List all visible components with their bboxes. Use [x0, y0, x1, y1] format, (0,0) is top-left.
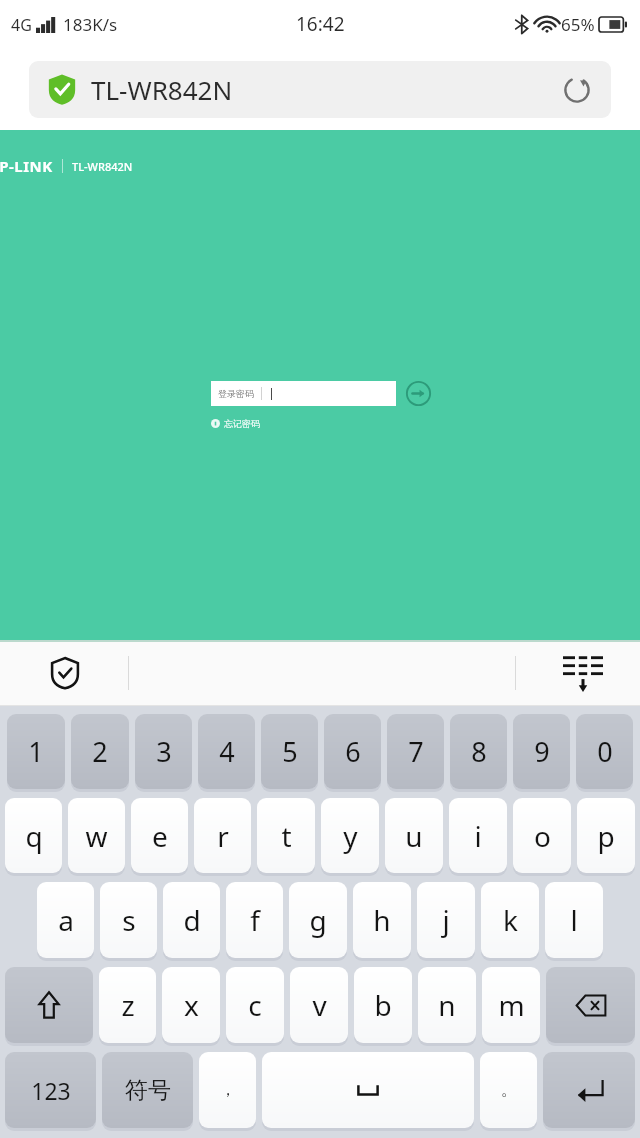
button[interactable]: n [418, 967, 476, 1043]
button[interactable]: e [131, 798, 188, 873]
button[interactable]: a [37, 882, 94, 958]
staticText: 65% [561, 13, 595, 36]
staticText: i [474, 817, 482, 855]
button[interactable]: m [482, 967, 540, 1043]
button[interactable]: 。 [480, 1052, 537, 1128]
button[interactable]: c [226, 967, 284, 1043]
button[interactable]: 3 [135, 714, 192, 789]
staticText: u [405, 817, 423, 855]
staticText: 4 [219, 733, 235, 770]
staticText: a [58, 901, 74, 939]
staticText: TL-WR842N [72, 159, 133, 174]
staticText: 忘记密码 [224, 418, 260, 429]
staticText: 123 [31, 1075, 71, 1106]
button[interactable]: 1 [7, 714, 65, 789]
staticText: e [152, 817, 168, 855]
button[interactable] [262, 1052, 474, 1128]
staticText: 9 [534, 733, 550, 770]
button[interactable]: h [353, 882, 411, 958]
staticText: d [183, 901, 201, 939]
staticText: q [25, 817, 43, 855]
button[interactable]: 123 [5, 1052, 96, 1128]
staticText: c [248, 986, 262, 1024]
button[interactable]: ， [199, 1052, 256, 1128]
button[interactable]: 7 [387, 714, 444, 789]
button[interactable] [5, 967, 93, 1043]
button[interactable]: 2 [71, 714, 129, 789]
staticText: 3 [156, 733, 172, 770]
staticText: r [217, 817, 229, 855]
staticText: h [373, 901, 391, 939]
staticText: 0 [597, 733, 613, 770]
staticText: 8 [471, 733, 487, 770]
staticText: l [570, 901, 578, 939]
staticText: ， [220, 1080, 236, 1100]
button[interactable]: p [577, 798, 635, 873]
button[interactable]: k [481, 882, 539, 958]
button[interactable]: d [163, 882, 220, 958]
staticText: 6 [345, 733, 361, 770]
button[interactable]: 5 [261, 714, 318, 789]
staticText: 5 [282, 733, 298, 770]
staticText: 1 [28, 733, 44, 770]
staticText: z [121, 986, 135, 1024]
other: Space [262, 1052, 474, 1131]
staticText: p [597, 817, 615, 855]
button[interactable]: s [100, 882, 157, 958]
button[interactable]: f [226, 882, 283, 958]
button[interactable]: 0 [576, 714, 633, 789]
staticText: n [438, 986, 456, 1024]
button[interactable] [543, 1052, 635, 1128]
staticText: f [250, 901, 260, 939]
button[interactable]: Log in [405, 380, 432, 407]
staticText: 登录密码 [218, 388, 254, 399]
button[interactable]: b [354, 967, 412, 1043]
button[interactable]: 9 [513, 714, 570, 789]
button[interactable]: 8 [450, 714, 507, 789]
other: Shift [5, 967, 93, 1046]
button[interactable]: o [513, 798, 571, 873]
button[interactable]: w [68, 798, 125, 873]
staticText: y [343, 817, 358, 855]
button[interactable]: u [385, 798, 443, 873]
button[interactable]: TL-WR842N [29, 61, 611, 118]
button[interactable]: Secure input [38, 646, 92, 700]
button[interactable]: z [99, 967, 156, 1043]
button[interactable]: x [162, 967, 220, 1043]
button[interactable] [546, 967, 635, 1043]
staticText: s [122, 901, 136, 939]
button[interactable]: Refresh [551, 64, 603, 116]
staticText: k [503, 901, 518, 939]
staticText: x [184, 986, 199, 1024]
staticText: w [85, 817, 108, 855]
other: Backspace [546, 967, 635, 1046]
staticText: 4G [11, 14, 32, 36]
button[interactable]: l [545, 882, 603, 958]
staticText: v [312, 986, 327, 1024]
button[interactable]: i [449, 798, 507, 873]
button[interactable]: r [194, 798, 251, 873]
staticText: TL-WR842N [91, 72, 233, 107]
other: Enter [543, 1052, 635, 1131]
button[interactable]: Hide keyboard [554, 644, 612, 702]
button[interactable]: q [5, 798, 62, 873]
button[interactable]: 4 [198, 714, 255, 789]
button[interactable]: g [289, 882, 347, 958]
button[interactable]: 6 [324, 714, 381, 789]
button[interactable]: 符号 [102, 1052, 193, 1128]
staticText: 16:42 [296, 11, 345, 37]
staticText: m [498, 986, 525, 1024]
button[interactable]: j [417, 882, 475, 958]
button[interactable]: y [321, 798, 379, 873]
staticText: j [442, 901, 450, 939]
button[interactable]: 登录密码 [211, 381, 396, 406]
staticText: 7 [408, 733, 424, 770]
staticText: g [309, 901, 327, 939]
button[interactable]: 忘记密码 [211, 418, 260, 429]
staticText: 2 [92, 733, 108, 770]
staticText: o [534, 817, 551, 855]
button[interactable]: v [290, 967, 348, 1043]
button[interactable]: t [257, 798, 315, 873]
staticText: t [281, 817, 292, 855]
staticText: 符号 [125, 1076, 171, 1105]
